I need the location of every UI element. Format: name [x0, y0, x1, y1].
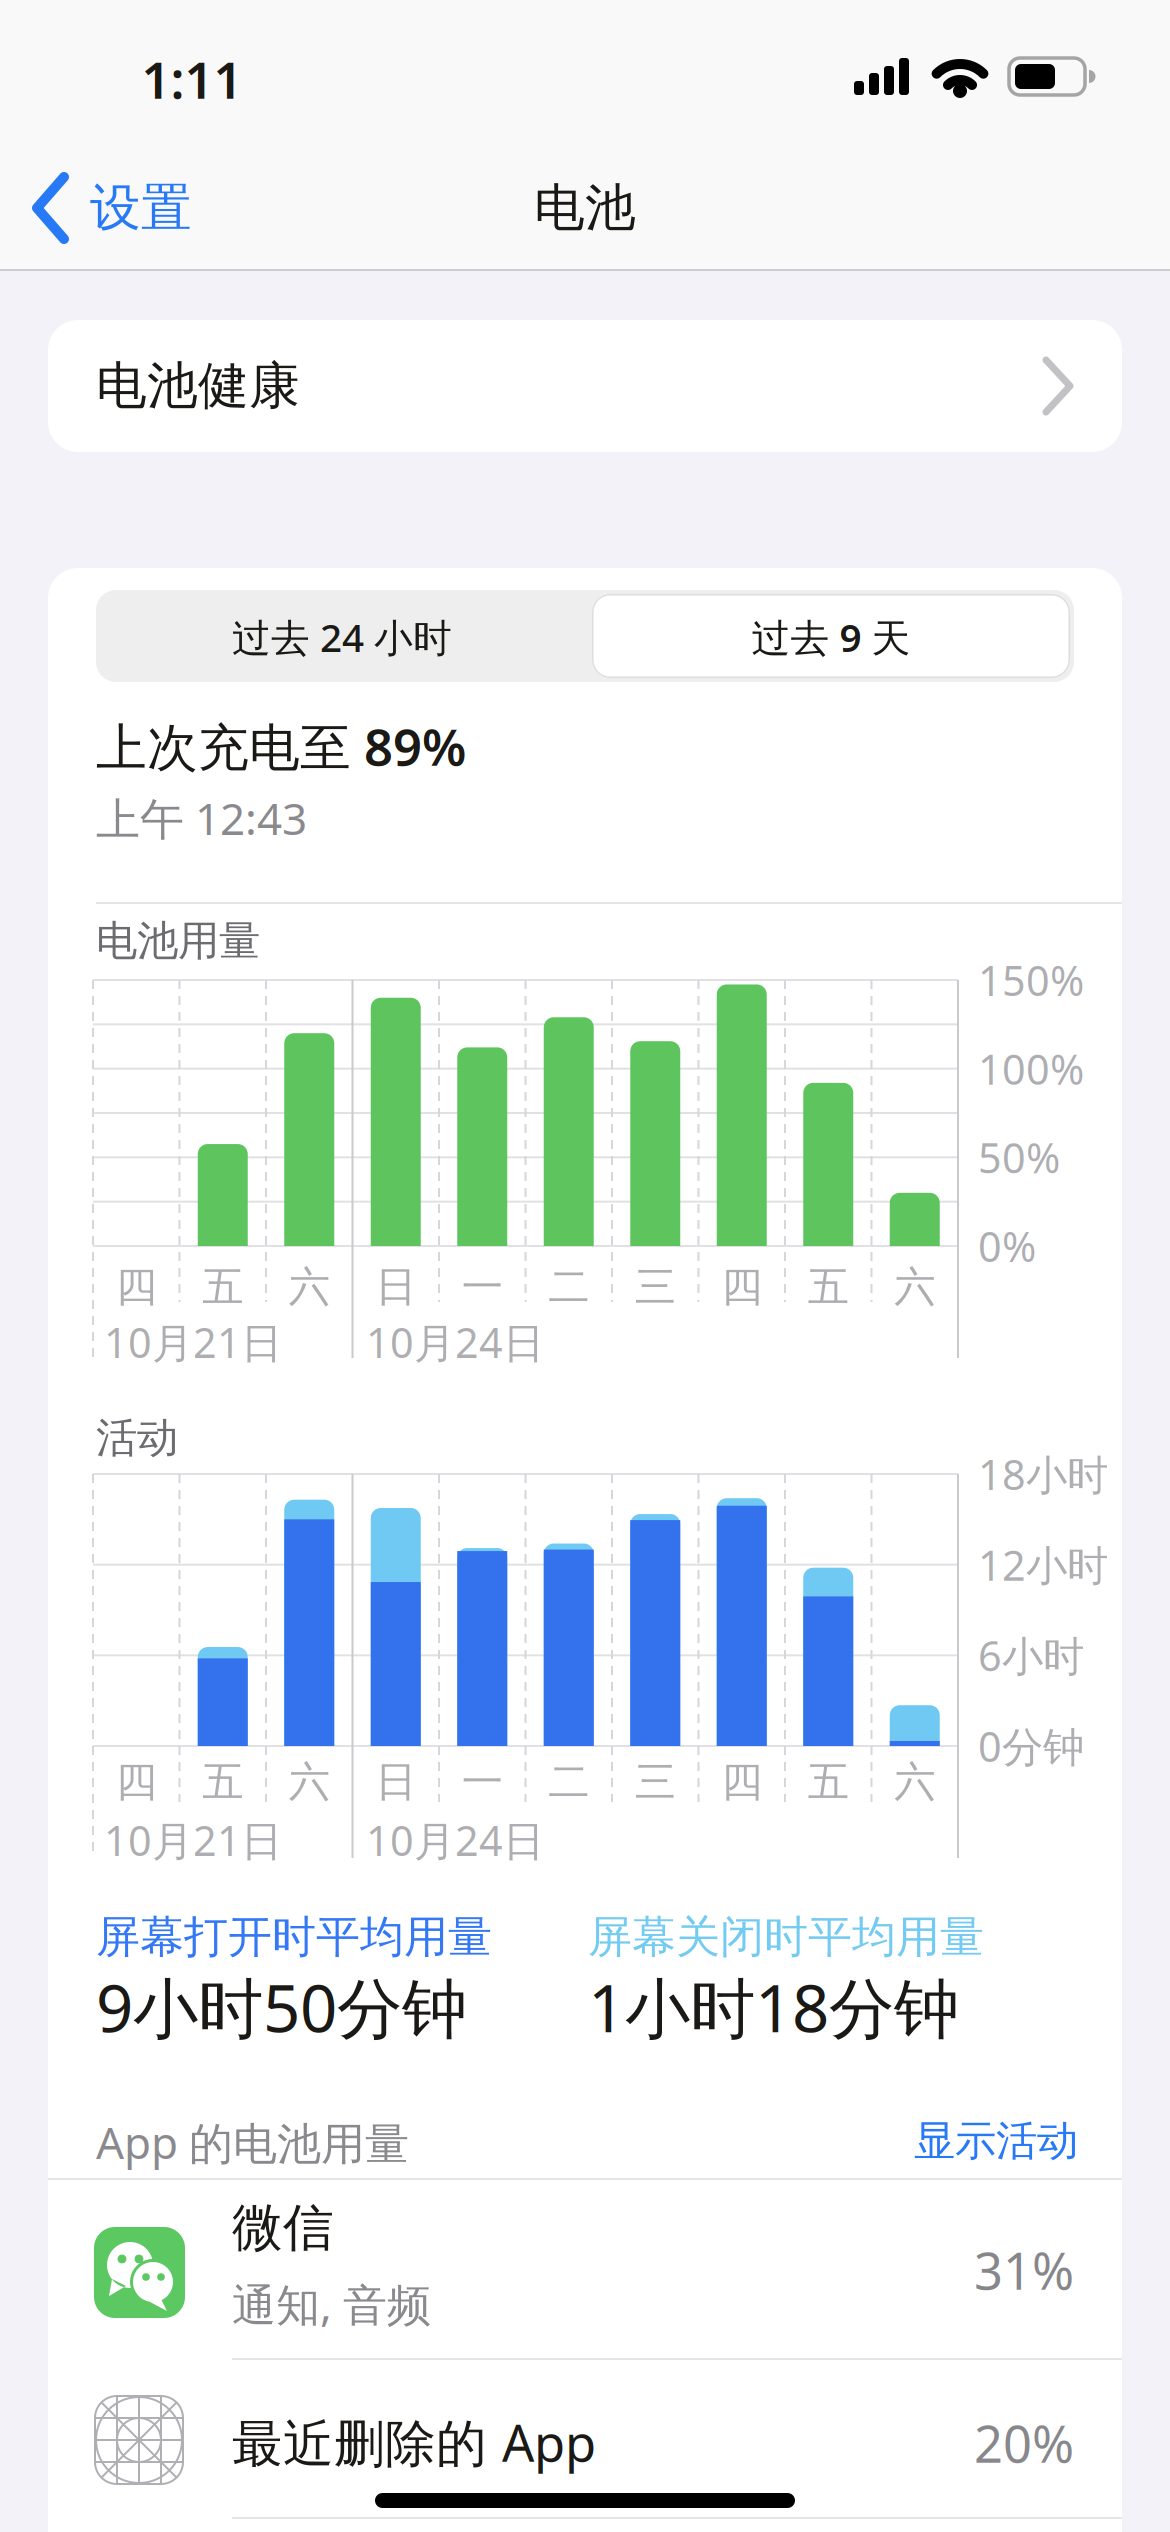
staticText: 过去 24 小时: [232, 611, 452, 663]
staticText: 10月21日: [104, 1813, 282, 1867]
staticText: 50%: [978, 1130, 1060, 1185]
staticText: 31%: [974, 2236, 1074, 2304]
staticText: 二: [548, 1262, 589, 1312]
staticText: 显示活动: [914, 2116, 1078, 2166]
staticText: 10月21日: [104, 1315, 282, 1369]
staticText: App 的电池用量: [96, 2113, 409, 2171]
staticText: 1:11: [141, 45, 242, 113]
staticText: 屏幕打开时平均用量: [96, 1910, 492, 1964]
staticText: 12小时: [978, 1537, 1108, 1592]
staticText: 四: [721, 1757, 762, 1807]
button[interactable]: 设置: [0, 0, 1170, 2532]
staticText: 上午 12:43: [96, 789, 307, 847]
staticText: 0分钟: [978, 1719, 1084, 1773]
staticText: 四: [721, 1262, 762, 1312]
staticText: 日: [375, 1262, 416, 1312]
staticText: 150%: [978, 953, 1084, 1007]
button[interactable]: 过去 9 天: [592, 594, 1070, 678]
staticText: 电池用量: [96, 916, 260, 966]
staticText: 100%: [978, 1041, 1084, 1096]
button[interactable]: 电池健康: [0, 0, 1170, 2532]
staticText: 四: [116, 1262, 157, 1312]
staticText: 五: [808, 1757, 849, 1807]
button[interactable]: 最近删除的 App: [0, 2360, 1170, 2518]
staticText: 上次充电至 89%: [96, 712, 466, 780]
staticText: 活动: [96, 1413, 178, 1463]
staticText: 9小时50分钟: [96, 1964, 467, 2050]
staticText: 6小时: [978, 1628, 1084, 1683]
staticText: 10月24日: [366, 1315, 544, 1369]
staticText: 五: [808, 1262, 849, 1312]
staticText: 微信: [232, 2197, 334, 2259]
staticText: 一: [462, 1262, 503, 1312]
button[interactable]: 过去 24 小时: [96, 590, 585, 682]
staticText: 通知, 音频: [232, 2275, 431, 2333]
button[interactable]: 显示活动: [678, 2114, 1078, 2168]
staticText: 10月24日: [366, 1813, 544, 1867]
staticText: 20%: [974, 2409, 1074, 2477]
button[interactable]: 微信: [0, 2180, 1170, 2358]
staticText: 日: [375, 1757, 416, 1807]
staticText: 屏幕关闭时平均用量: [588, 1910, 984, 1964]
staticText: 六: [894, 1262, 935, 1312]
staticText: 电池健康: [96, 355, 300, 417]
staticText: 五: [202, 1757, 243, 1807]
staticText: 六: [289, 1757, 330, 1807]
staticText: 二: [548, 1757, 589, 1807]
staticText: 0%: [978, 1219, 1036, 1273]
staticText: 过去 9 天: [751, 611, 910, 663]
staticText: 三: [635, 1757, 676, 1807]
staticText: 最近删除的 App: [232, 2408, 596, 2476]
staticText: 六: [289, 1262, 330, 1312]
staticText: 电池: [534, 177, 636, 239]
staticText: 六: [894, 1757, 935, 1807]
staticText: 1小时18分钟: [588, 1964, 959, 2050]
staticText: 18小时: [978, 1447, 1108, 1501]
staticText: 五: [202, 1262, 243, 1312]
staticText: 三: [635, 1262, 676, 1312]
staticText: 一: [462, 1757, 503, 1807]
staticText: 设置: [90, 177, 192, 239]
staticText: 四: [116, 1757, 157, 1807]
